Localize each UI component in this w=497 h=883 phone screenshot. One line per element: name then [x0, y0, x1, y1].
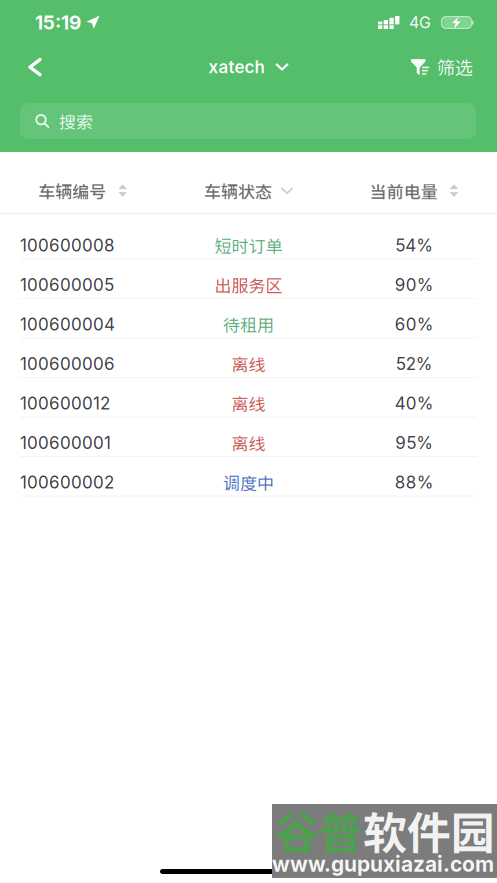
staticText: 100600006 — [20, 353, 115, 374]
button[interactable]: xatech — [208, 45, 288, 89]
staticText: 100600004 — [20, 314, 115, 335]
staticText: 谷普 — [275, 798, 363, 862]
staticText: 筛选 — [437, 54, 473, 80]
button[interactable]: Back — [0, 45, 57, 89]
staticText: 88% — [395, 472, 434, 493]
staticText: www.gupuxiazai.com — [272, 851, 494, 877]
staticText: 车辆编号 — [38, 178, 106, 203]
staticText: 100600012 — [20, 393, 110, 414]
button[interactable]: 当前电量 — [331, 152, 497, 213]
button[interactable]: 车辆编号 — [0, 152, 166, 213]
staticText: 离线 — [231, 391, 265, 416]
staticText: 54% — [395, 235, 433, 256]
staticText: 离线 — [231, 351, 265, 376]
staticText: 车辆状态 — [204, 178, 272, 203]
staticText: 100600008 — [20, 235, 115, 256]
staticText: 15:19 — [35, 11, 81, 34]
button[interactable]: 筛选 — [411, 45, 497, 89]
staticText: 90% — [395, 274, 434, 295]
staticText: 搜索 — [59, 109, 93, 133]
staticText: 调度中 — [223, 470, 274, 495]
staticText: 100600001 — [20, 432, 111, 453]
staticText: 95% — [395, 432, 433, 453]
staticText: 100600002 — [20, 472, 114, 493]
staticText: 4G — [409, 13, 431, 32]
staticText: 52% — [396, 353, 433, 374]
staticText: 当前电量 — [370, 178, 438, 203]
button[interactable]: 车辆状态 — [166, 152, 331, 213]
staticText: 40% — [395, 393, 434, 414]
staticText: 短时订单 — [214, 233, 282, 258]
staticText: 100600005 — [20, 274, 114, 295]
staticText: xatech — [208, 57, 264, 77]
staticText: 出服务区 — [214, 272, 282, 297]
staticText: 软件园 — [363, 798, 495, 862]
staticText: 离线 — [231, 430, 265, 455]
button[interactable]: 搜索 — [0, 103, 497, 139]
staticText: 60% — [395, 314, 434, 335]
staticText: 待租用 — [223, 312, 274, 337]
